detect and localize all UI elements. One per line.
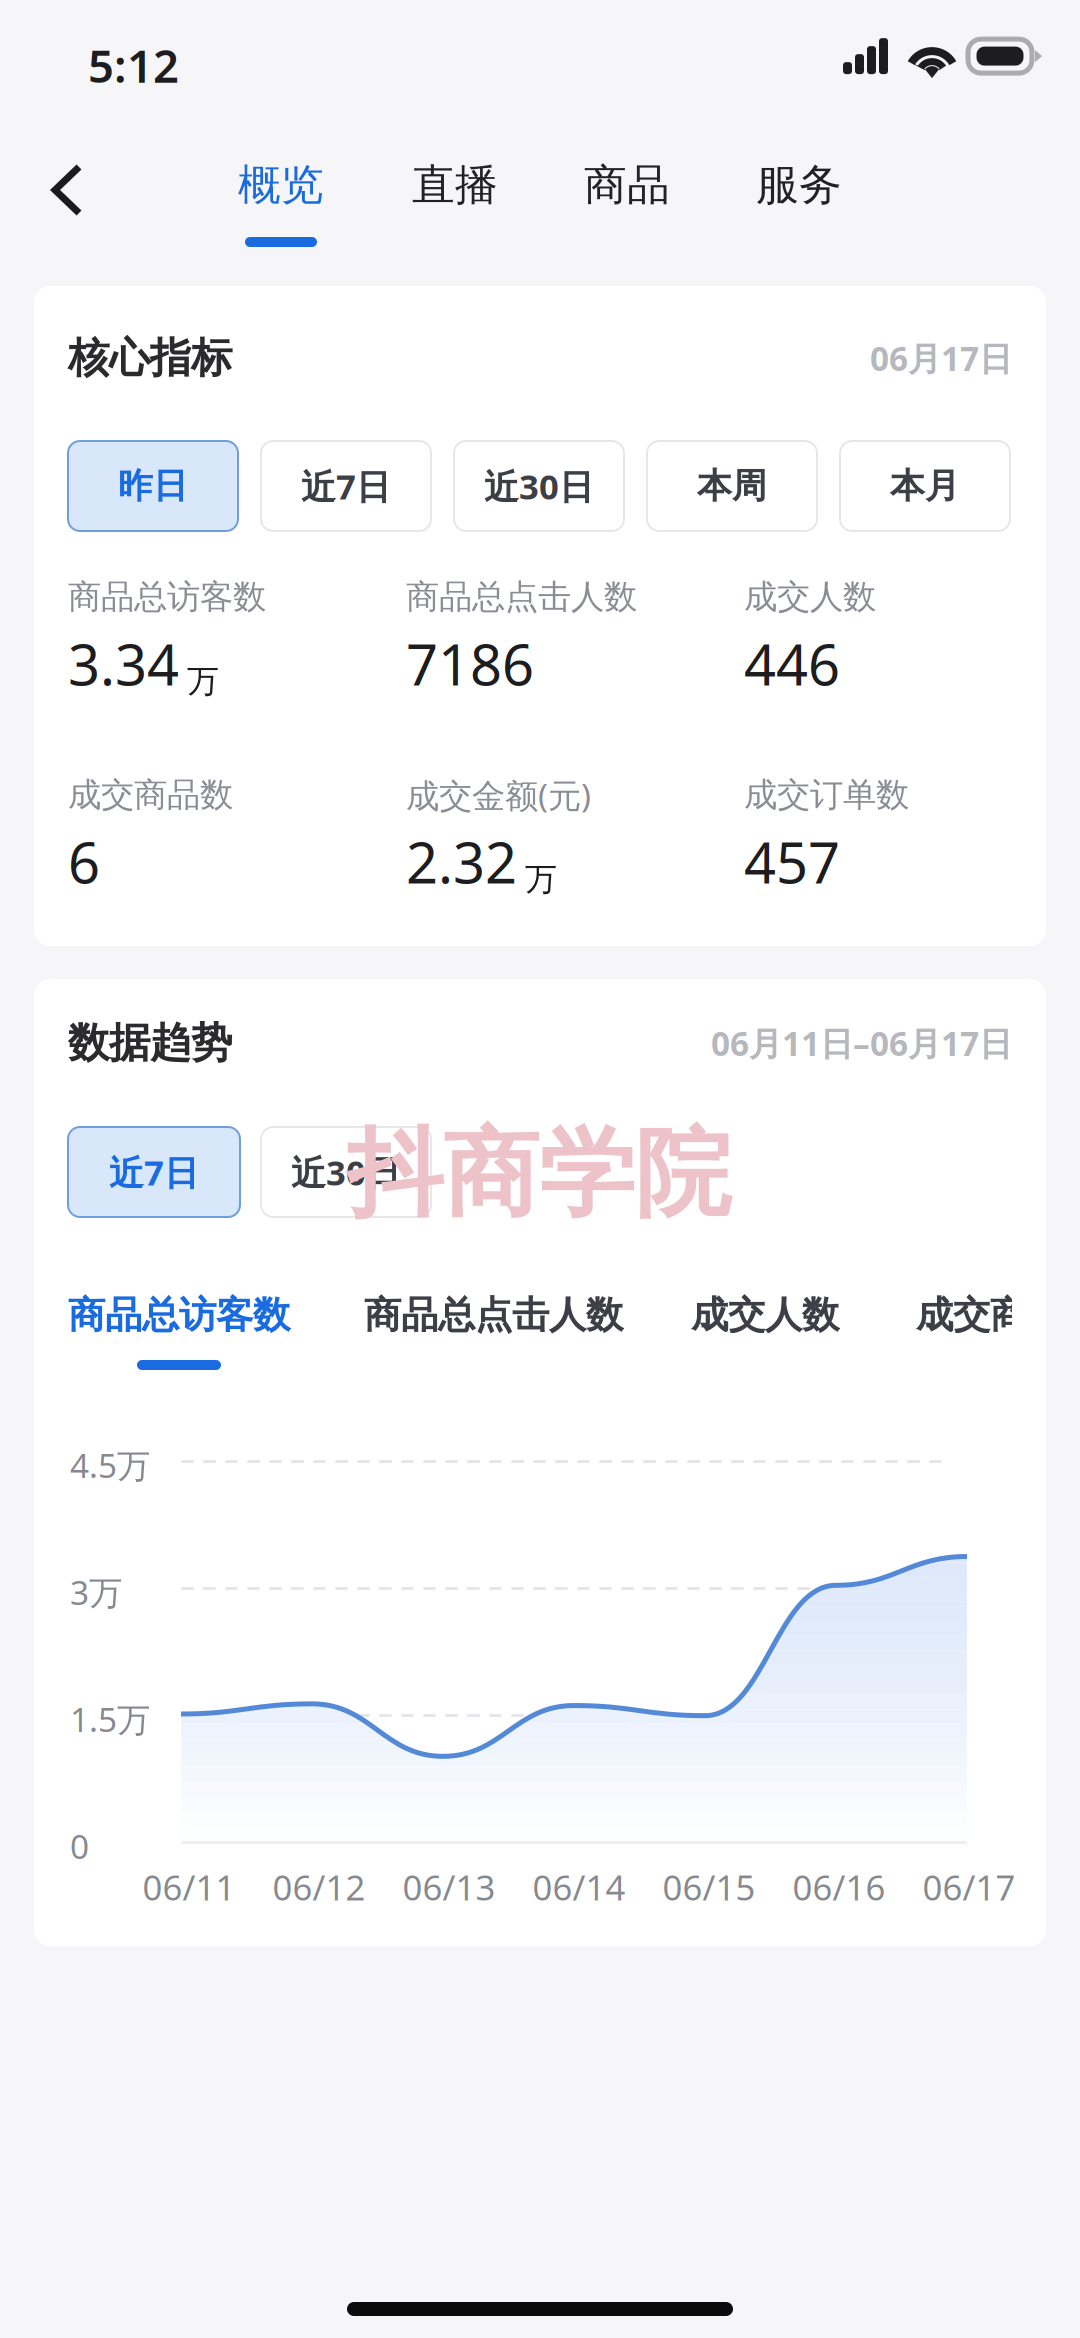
staticText: 1.5万 [70,1697,150,1741]
staticText: 服务 [756,159,842,211]
staticText: 成交商 [916,1292,1027,1338]
staticText: 06/14 [532,1864,625,1910]
staticText: 06/12 [272,1864,365,1910]
button[interactable]: 商品 [567,159,687,247]
button[interactable]: 近7日 [68,1127,240,1217]
staticText: 商品 [584,159,670,211]
staticText: 万 [187,662,219,701]
staticText: 3.34 [68,627,179,701]
staticText: 6 [68,825,100,899]
staticText: 抖商学院 [347,1115,731,1233]
staticText: 近30日 [484,463,594,509]
staticText: 成交金额(元) [406,773,591,817]
button[interactable]: 本周 [647,441,817,531]
staticText: 本周 [697,465,767,507]
staticText: 商品总点击人数 [364,1292,623,1338]
staticText: 本月 [890,465,960,507]
staticText: 06月11日–06月17日 [711,1021,1012,1065]
button[interactable]: 近7日 [261,441,431,531]
button[interactable]: Back [0,159,221,217]
button[interactable]: 直播 [395,159,515,247]
button[interactable]: 昨日 [68,441,238,531]
button[interactable]: 成交人数 [691,1292,839,1370]
button[interactable]: 概览 [221,159,341,247]
staticText: 数据趋势 [68,1018,232,1068]
staticText: 3万 [70,1570,122,1614]
staticText: 成交人数 [744,576,876,617]
staticText: 06/16 [792,1864,885,1910]
staticText: 457 [744,825,840,899]
staticText: 7186 [406,627,534,701]
staticText: 06/13 [402,1864,495,1910]
staticText: 近7日 [301,463,391,509]
button[interactable]: 本月 [840,441,1010,531]
staticText: 成交商品数 [68,774,233,815]
staticText: 直播 [412,159,498,211]
staticText: 商品总访客数 [68,576,266,617]
staticText: 06/17 [922,1864,1015,1910]
button[interactable]: 服务 [739,159,859,247]
staticText: 5:12 [88,35,179,95]
button[interactable]: 商品总点击人数 [364,1292,623,1370]
staticText: 万 [525,860,557,899]
staticText: 昨日 [118,465,188,507]
staticText: 0 [70,1824,89,1868]
staticText: 4.5万 [70,1443,150,1487]
staticText: 近7日 [109,1149,199,1195]
staticText: 近30日 [291,1149,401,1195]
staticText: 2.32 [406,825,517,899]
button[interactable]: 成交商 [916,1292,1027,1370]
staticText: 06/11 [142,1864,235,1910]
staticText: 概览 [238,159,324,211]
staticText: 06/15 [662,1864,755,1910]
staticText: 核心指标 [68,333,232,383]
staticText: 成交人数 [691,1292,839,1338]
button[interactable]: 近30日 [261,1127,431,1217]
staticText: 06月17日 [870,336,1012,380]
staticText: 成交订单数 [744,774,909,815]
staticText: 商品总访客数 [68,1292,290,1338]
staticText: 商品总点击人数 [406,576,637,617]
button[interactable]: 商品总访客数 [68,1292,290,1370]
staticText: 446 [744,627,840,701]
button[interactable]: 近30日 [454,441,624,531]
